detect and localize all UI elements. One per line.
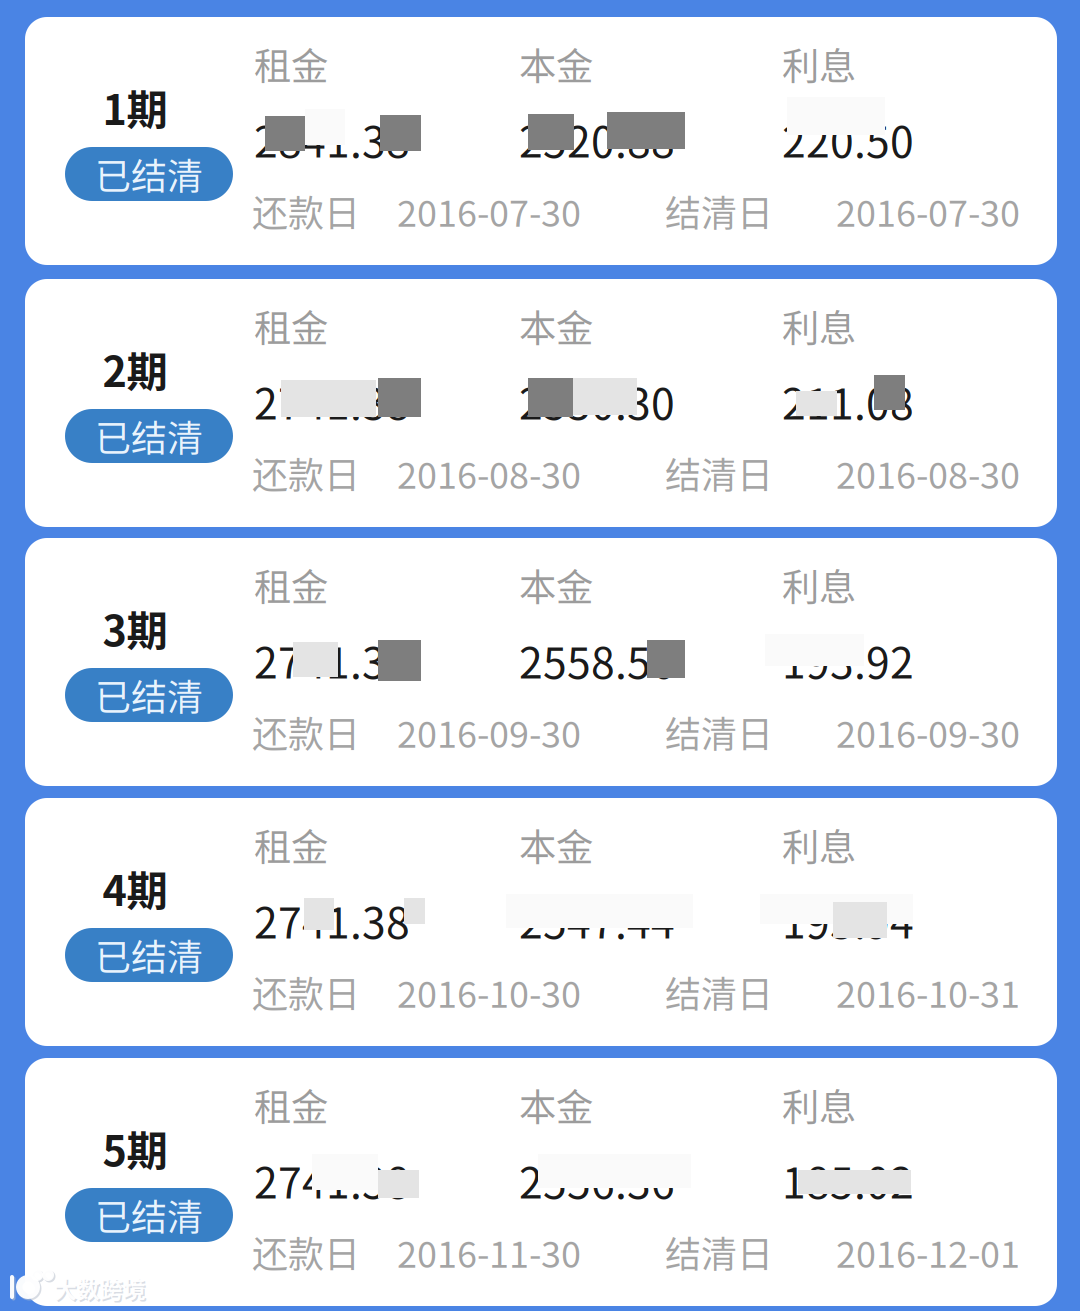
staticText: 2016-12-01 [836,1226,1020,1278]
staticText: 租金 [254,1078,328,1132]
button[interactable]: 4期 [25,798,1057,1046]
staticText: 2016-09-30 [397,706,581,758]
staticText: 还款日 [252,706,360,758]
staticText: 利息 [782,558,856,612]
staticText: 2期 [102,339,167,399]
staticText: 2016-10-30 [397,966,581,1018]
staticText: 2556.36 [519,1149,675,1211]
staticText: 193.94 [782,889,914,951]
staticText: 2741.38 [254,629,410,691]
staticText: 2016-07-30 [397,185,581,237]
button[interactable]: 1期 [25,17,1057,265]
staticText: 2841.38 [254,108,410,170]
staticText: 2741.38 [254,370,410,432]
staticText: 4期 [102,858,167,918]
staticText: 已结清 [95,410,203,462]
button[interactable]: 5期 [25,1058,1057,1306]
staticText: 已结清 [95,929,203,981]
staticText: 3期 [102,598,167,658]
staticText: 2741.38 [254,889,410,951]
staticText: 结清日 [665,185,773,237]
staticText: 结清日 [665,447,773,499]
staticText: 利息 [782,299,856,353]
staticText: 本金 [519,1078,593,1132]
staticText: 还款日 [252,1226,360,1278]
staticText: 还款日 [252,185,360,237]
staticText: 2016-11-30 [397,1226,581,1278]
staticText: 租金 [254,558,328,612]
staticText: 185.02 [782,1149,914,1211]
staticText: 220.50 [782,108,914,170]
staticText: 2016-08-30 [836,447,1020,499]
staticText: 结清日 [665,1226,773,1278]
staticText: 还款日 [252,966,360,1018]
staticText: 2547.44 [519,889,675,951]
staticText: 已结清 [95,1189,203,1241]
staticText: 利息 [782,37,856,91]
staticText: 本金 [519,299,593,353]
staticText: 大数跨境 [54,1272,146,1304]
staticText: 2520.88 [519,108,675,170]
button[interactable]: 3期 [25,538,1057,786]
staticText: 已结清 [95,148,203,200]
staticText: 5期 [102,1118,167,1178]
staticText: 本金 [519,818,593,872]
staticText: 租金 [254,818,328,872]
staticText: 211.08 [782,370,914,432]
staticText: 193.92 [782,629,914,691]
staticText: 2016-10-31 [836,966,1020,1018]
staticText: 租金 [254,299,328,353]
staticText: 2530.30 [519,370,675,432]
staticText: 已结清 [95,669,203,721]
staticText: 租金 [254,37,328,91]
staticText: 2016-07-30 [836,185,1020,237]
staticText: 2016-08-30 [397,447,581,499]
staticText: 结清日 [665,966,773,1018]
staticText: 本金 [519,37,593,91]
staticText: 结清日 [665,706,773,758]
staticText: 大数跨境 [55,1273,147,1306]
staticText: 还款日 [252,447,360,499]
staticText: 2558.56 [519,629,675,691]
staticText: 利息 [782,818,856,872]
staticText: 利息 [782,1078,856,1132]
staticText: 本金 [519,558,593,612]
staticText: 2741.38 [254,1149,410,1211]
staticText: 2016-09-30 [836,706,1020,758]
button[interactable]: 2期 [25,279,1057,527]
staticText: 1期 [102,77,167,137]
